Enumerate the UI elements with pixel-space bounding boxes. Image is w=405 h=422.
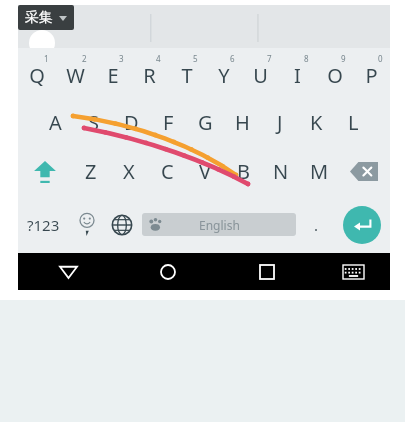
- button[interactable]: C: [148, 146, 186, 196]
- staticText: C: [161, 158, 174, 185]
- button[interactable]: Z: [71, 146, 110, 196]
- staticText: 9: [341, 53, 346, 64]
- button[interactable]: P: [353, 48, 390, 98]
- staticText: 6: [230, 53, 235, 64]
- button[interactable]: X: [110, 146, 148, 196]
- button[interactable]: N: [262, 146, 300, 196]
- staticText: 0: [378, 53, 383, 64]
- staticText: ?123: [27, 215, 60, 235]
- button[interactable]: A: [36, 98, 74, 146]
- button[interactable]: J: [261, 98, 298, 146]
- button[interactable]: F: [150, 98, 187, 146]
- button[interactable]: .: [299, 196, 334, 253]
- staticText: F: [163, 109, 174, 136]
- button[interactable]: Q: [18, 48, 56, 98]
- button[interactable]: B: [224, 146, 262, 196]
- button[interactable]: O: [316, 48, 353, 98]
- button[interactable]: R: [131, 48, 168, 98]
- button[interactable]: Enter: [343, 206, 381, 244]
- button[interactable]: G: [187, 98, 224, 146]
- button[interactable]: Home: [118, 253, 217, 290]
- button[interactable]: Recents: [217, 253, 316, 290]
- staticText: N: [273, 158, 289, 185]
- staticText: K: [310, 109, 323, 136]
- staticText: S: [88, 109, 99, 136]
- button[interactable]: [18, 5, 390, 48]
- button[interactable]: W: [56, 48, 94, 98]
- button[interactable]: Backspace: [338, 146, 390, 196]
- staticText: D: [124, 109, 139, 136]
- staticText: J: [277, 109, 283, 136]
- staticText: 8: [304, 53, 309, 64]
- staticText: G: [198, 109, 213, 136]
- button[interactable]: Back: [18, 253, 118, 290]
- staticText: V: [199, 158, 211, 185]
- staticText: R: [143, 62, 156, 89]
- staticText: 1: [44, 53, 49, 64]
- button[interactable]: V: [186, 146, 224, 196]
- button[interactable]: S: [74, 98, 112, 146]
- button[interactable]: Keyboard: [316, 253, 390, 290]
- staticText: H: [235, 109, 250, 136]
- button[interactable]: E: [94, 48, 131, 98]
- button[interactable]: M: [300, 146, 338, 196]
- button[interactable]: English: [142, 213, 296, 236]
- button[interactable]: Emoji: [69, 196, 104, 253]
- button[interactable]: U: [242, 48, 279, 98]
- staticText: I: [294, 62, 301, 89]
- staticText: P: [365, 62, 378, 89]
- button[interactable]: Y: [205, 48, 242, 98]
- staticText: L: [348, 109, 359, 136]
- staticText: 2: [82, 53, 87, 64]
- button[interactable]: ?123: [18, 196, 69, 253]
- staticText: A: [49, 109, 62, 136]
- staticText: 5: [193, 53, 198, 64]
- staticText: Z: [85, 158, 97, 185]
- button[interactable]: Change language: [104, 196, 139, 253]
- staticText: English: [199, 217, 240, 233]
- button[interactable]: H: [224, 98, 261, 146]
- staticText: 3: [119, 53, 124, 64]
- staticText: O: [327, 62, 343, 89]
- button[interactable]: 采集: [18, 5, 74, 30]
- staticText: .: [314, 215, 319, 235]
- staticText: Q: [29, 62, 45, 89]
- staticText: B: [237, 158, 250, 185]
- staticText: 4: [156, 53, 161, 64]
- staticText: W: [66, 62, 85, 89]
- button[interactable]: I: [279, 48, 316, 98]
- button[interactable]: Shift: [18, 146, 71, 196]
- staticText: 采集: [25, 9, 53, 27]
- button[interactable]: T: [168, 48, 205, 98]
- staticText: U: [253, 62, 268, 89]
- staticText: Y: [218, 62, 230, 89]
- staticText: 7: [267, 53, 272, 64]
- button[interactable]: D: [112, 98, 150, 146]
- button[interactable]: K: [298, 98, 335, 146]
- button[interactable]: L: [335, 98, 372, 146]
- staticText: M: [310, 158, 329, 185]
- staticText: T: [181, 62, 193, 89]
- staticText: X: [123, 158, 135, 185]
- staticText: E: [107, 62, 119, 89]
